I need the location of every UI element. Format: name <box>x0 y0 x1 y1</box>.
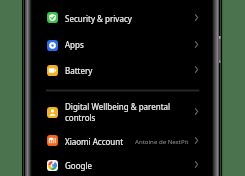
staticText: Google <box>65 160 92 171</box>
staticText: Apps <box>65 39 84 50</box>
button[interactable]: Security & privacy <box>32 5 212 31</box>
button[interactable]: Xiaomi Account <box>32 129 212 153</box>
button[interactable]: Google <box>32 153 212 176</box>
staticText: Battery <box>65 65 93 76</box>
staticText: Antoine de NextPit <box>135 137 189 145</box>
staticText: Security & privacy <box>65 13 132 24</box>
button[interactable]: Battery <box>32 58 212 83</box>
button[interactable]: Apps <box>32 31 212 58</box>
staticText: controls <box>65 112 96 123</box>
staticText: Xiaomi Account <box>65 136 124 147</box>
other: Settings <box>0 0 245 176</box>
staticText: Digital Wellbeing & parental <box>65 101 171 112</box>
button[interactable]: Digital Wellbeing & parental <box>32 95 212 129</box>
